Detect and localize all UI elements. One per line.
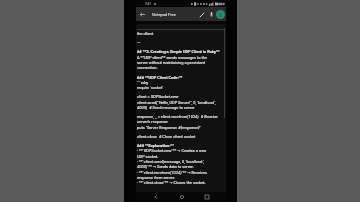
staticText: client.close # Close client socket <box>137 134 225 139</box>
button[interactable]: Recent apps <box>201 192 212 202</box>
staticText: response from server. <box>137 175 225 180</box>
staticText: server without maintaining a persistent <box>137 60 225 65</box>
staticText: server's response <box>137 119 225 124</box>
staticText: require 'socket' <box>137 85 225 90</box>
button[interactable]: Back <box>150 192 161 202</box>
staticText: 9:41 <box>145 2 152 6</box>
button[interactable]: Back <box>138 10 147 19</box>
staticText: --- <box>137 40 225 45</box>
staticText: 4000)`** → Sends data to server. <box>137 164 225 169</box>
staticText: response, _ = client.recvfrom(1024) # Re… <box>137 114 225 119</box>
staticText: A **UDP client** sends messages to the <box>137 55 225 60</box>
staticText: connection. <box>137 65 225 70</box>
staticText: ```ruby <box>137 80 225 85</box>
staticText: Notepad Free <box>152 12 197 17</box>
staticText: - **`client.recvfrom(1024)`** → Receives <box>137 170 225 175</box>
staticText: client.send("Hello, UDP Server!", 0, 'lo… <box>137 100 225 105</box>
staticText: ### **Explanation:** <box>137 143 225 148</box>
staticText: - **`UDPSocket.new`** → Creates a new <box>137 148 225 153</box>
button[interactable]: Home <box>176 192 187 202</box>
button[interactable]: Account <box>216 10 225 19</box>
staticText: the client. <box>137 31 225 36</box>
staticText: 4000) # Send message to server <box>137 105 225 110</box>
staticText: ### **UDP Client Code:** <box>137 75 225 80</box>
staticText: - **`client.send(message, 0, 'localhost'… <box>137 159 225 164</box>
staticText: client = UDPSocket.new <box>137 94 225 99</box>
staticText: - **`client.close`** → Closes the socket… <box>137 180 225 185</box>
staticText: S <box>219 12 223 18</box>
staticText: ## **3. Creating a Simple UDP Client in … <box>137 49 225 54</box>
staticText: puts "Server Response: #{response}" <box>137 125 225 130</box>
button[interactable]: Voice input <box>207 10 215 18</box>
staticText: UDP socket. <box>137 154 225 159</box>
button[interactable]: Edit <box>197 10 206 19</box>
